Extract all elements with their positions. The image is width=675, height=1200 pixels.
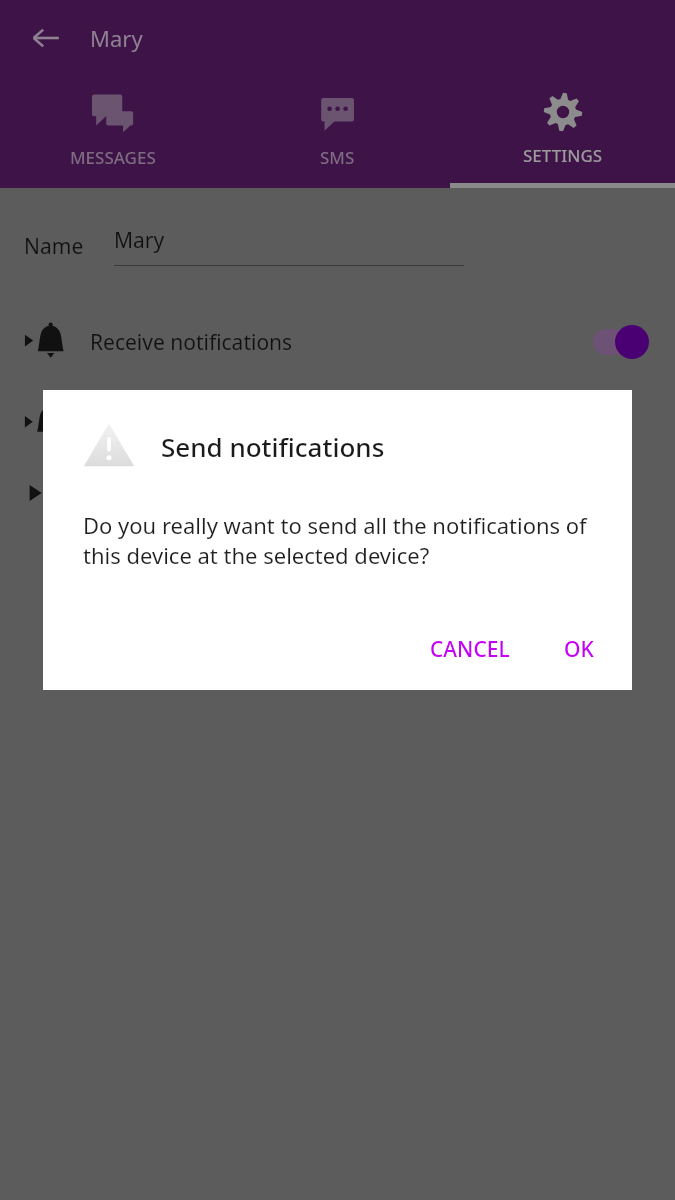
button[interactable] [0,468,675,518]
staticText: OK [564,635,594,664]
staticText: Name [24,232,84,261]
button[interactable]: CANCEL [414,623,526,676]
staticText: Receive notifications [90,328,293,357]
staticText: MESSAGES [70,146,156,169]
staticText: SETTINGS [523,144,603,167]
button[interactable]: OK [548,623,610,676]
button[interactable]: SMS [225,76,450,188]
button[interactable]: Back [22,14,70,62]
button[interactable]: Receive notifications [0,312,675,372]
button[interactable] [0,394,675,452]
staticText: Send notifications [161,429,385,464]
staticText: Do you really want to send all the notif… [83,510,592,571]
button[interactable]: MESSAGES [0,76,225,188]
staticText: Mary [90,23,143,53]
button[interactable]: SETTINGS [450,76,675,188]
staticText: SMS [320,146,355,169]
staticText: CANCEL [430,635,510,664]
staticText: Mary [114,226,165,255]
